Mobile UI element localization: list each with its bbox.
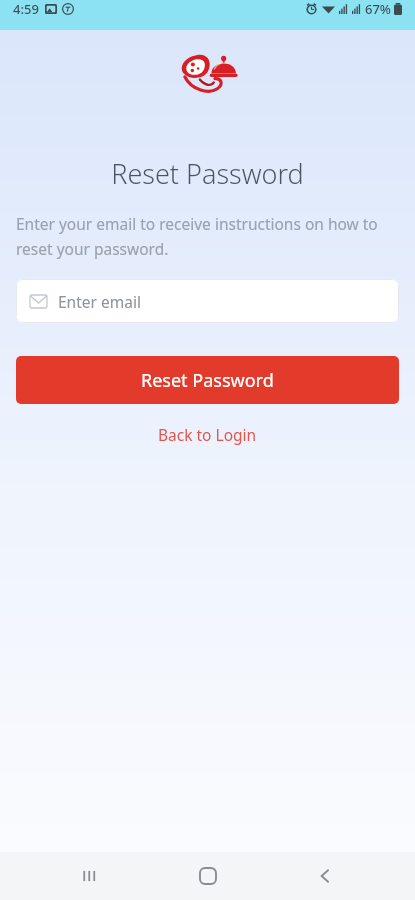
staticText: Back to Login xyxy=(158,424,257,445)
button[interactable]: Home xyxy=(180,852,236,900)
button[interactable]: Back to Login xyxy=(148,420,267,449)
staticText: 4:59 xyxy=(13,0,39,18)
button[interactable]: Reset Password xyxy=(16,356,399,404)
staticText: 67% xyxy=(365,0,391,18)
button[interactable]: Recent apps xyxy=(62,852,118,900)
button[interactable]: Back xyxy=(297,852,353,900)
staticText: Enter your email to receive instructions… xyxy=(16,213,399,260)
staticText: Enter email xyxy=(58,291,141,312)
staticText: Reset Password xyxy=(0,155,415,192)
staticText: Reset Password xyxy=(141,368,274,393)
button[interactable]: Enter email xyxy=(16,279,399,323)
